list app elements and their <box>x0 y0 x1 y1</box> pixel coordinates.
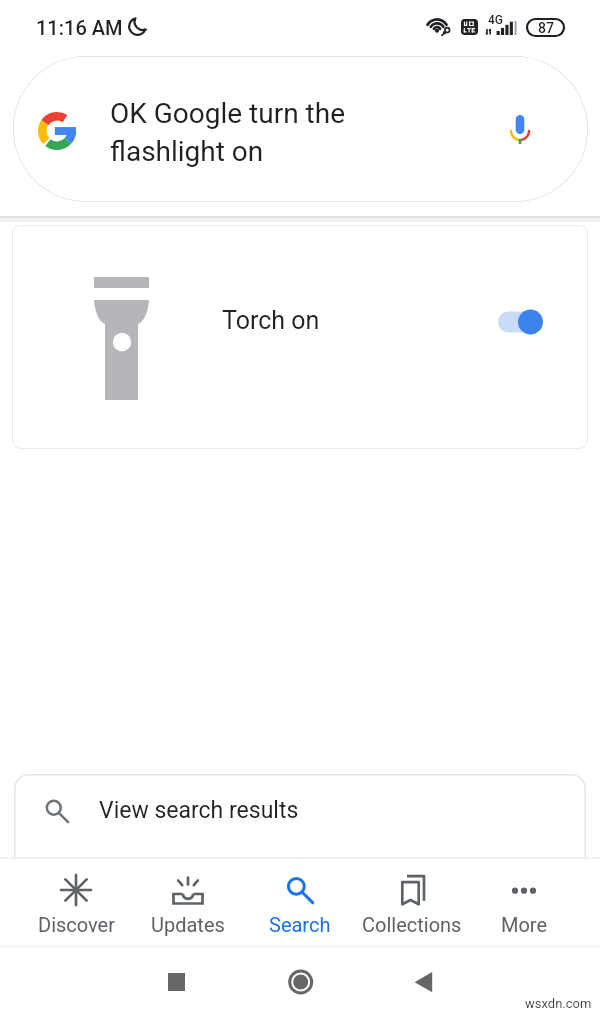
staticText: wsxdn.com <box>525 996 592 1011</box>
button[interactable]: Torch on <box>12 225 588 449</box>
staticText: OK Google turn the flashlight on <box>110 97 346 168</box>
staticText: 4G <box>488 13 503 27</box>
button[interactable]: Updates <box>132 857 244 947</box>
staticText: Updates <box>151 913 225 936</box>
staticText: View search results <box>99 797 299 824</box>
staticText: 11:16 AM <box>36 16 123 39</box>
button[interactable]: Discover <box>20 857 132 947</box>
staticText: Torch on <box>222 306 320 335</box>
staticText: 87 <box>538 20 554 36</box>
staticText: More <box>501 913 548 936</box>
staticText: Discover <box>38 913 115 936</box>
button[interactable]: Back <box>398 960 442 1004</box>
staticText: Collections <box>362 913 462 936</box>
button[interactable]: Collections <box>356 857 468 947</box>
button[interactable]: Search <box>244 857 356 947</box>
staticText: Search <box>269 913 331 936</box>
button[interactable]: Voice search <box>496 100 548 152</box>
button[interactable]: Torch toggle <box>498 297 543 347</box>
button[interactable]: OK Google turn the flashlight on <box>13 56 588 202</box>
button[interactable]: Recents <box>154 960 198 1004</box>
button[interactable]: View search results <box>14 774 586 857</box>
button[interactable]: Home <box>279 960 323 1004</box>
button[interactable]: More <box>468 857 580 947</box>
